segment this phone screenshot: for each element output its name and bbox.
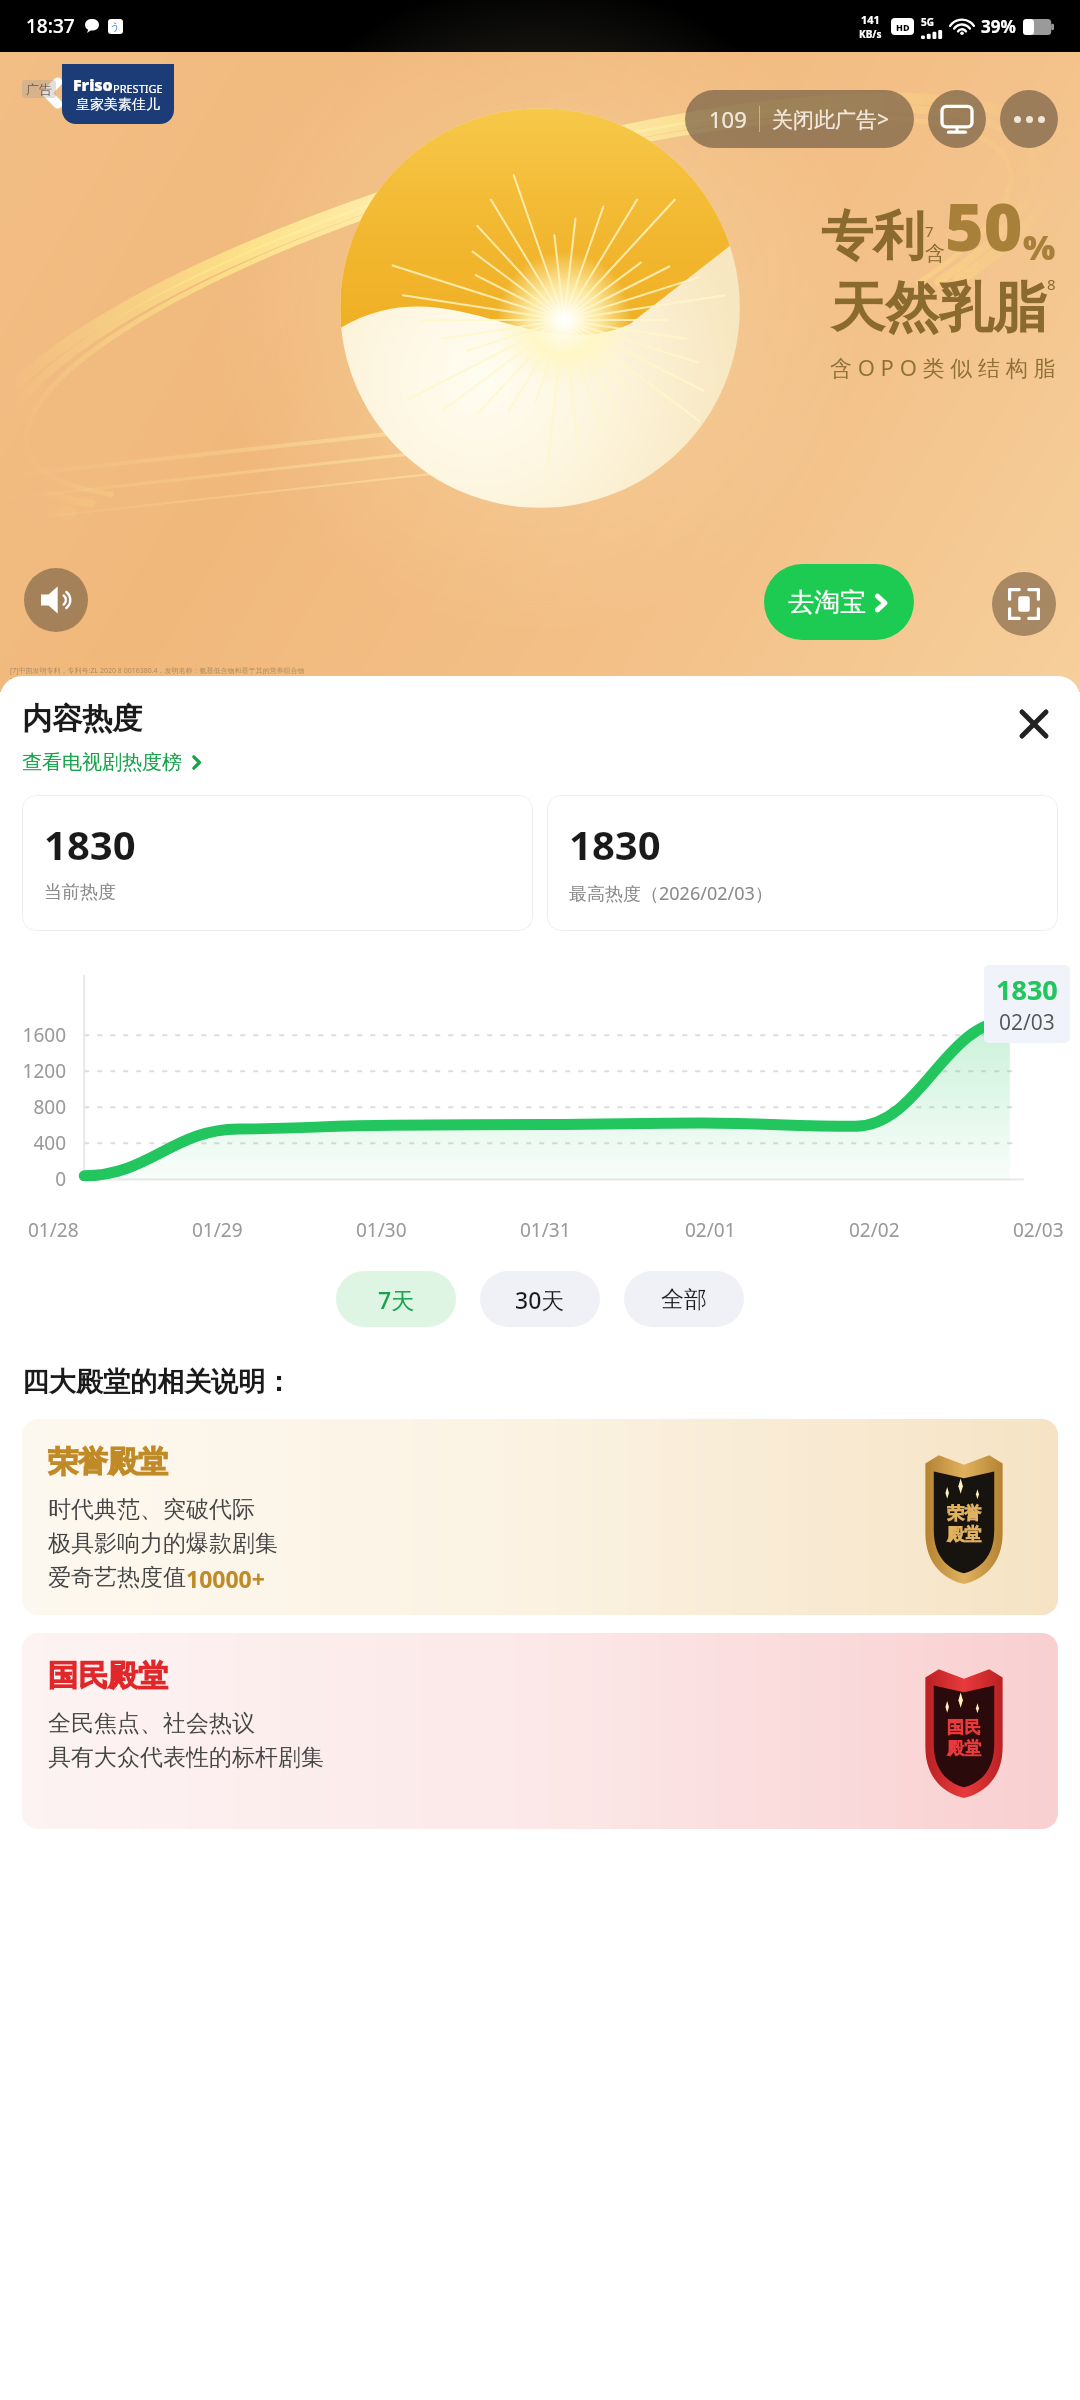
staticText: 1830 [44,817,136,871]
staticText: 荣誉 [947,1503,981,1524]
button[interactable]: 7天 [336,1271,456,1327]
staticText: 含 [925,241,945,266]
staticText: 爱奇艺热度值 [48,1563,186,1592]
staticText: Friso [73,74,113,96]
staticText: 1200 [0,1058,66,1084]
staticText: 1830 [569,817,661,871]
button[interactable]: 去淘宝 [764,564,914,640]
staticText: 查看电视剧热度榜 [22,750,182,775]
staticText: 400 [0,1130,66,1156]
staticText: KB/s [859,27,882,41]
button[interactable]: 1830 [22,795,533,931]
button[interactable]: Scan [992,572,1056,636]
staticText: 10000+ [186,1563,265,1594]
staticText: 7天 [378,1284,415,1315]
staticText: 141 [861,12,880,27]
staticText: 去淘宝 [788,586,866,619]
staticText: 最高热度（2026/02/03） [569,881,773,906]
staticText: 8 [1047,274,1056,294]
staticText: 50 [945,180,1023,270]
staticText: 极具影响力的爆款剧集 [48,1529,278,1558]
staticText: 殿堂 [947,1524,981,1545]
staticText: 广告 [26,81,52,97]
staticText: 18:37 [26,13,75,39]
button[interactable]: Sound [24,568,88,632]
staticText: 内容热度 [22,700,142,738]
staticText: 01/31 [520,1217,571,1243]
staticText: 全部 [661,1285,707,1314]
staticText: 天然乳脂 [831,274,1047,342]
staticText: 01/30 [356,1217,407,1243]
staticText: 皇家美素佳儿 [76,96,160,114]
staticText: う [110,20,121,33]
button[interactable]: 查看电视剧热度榜 [22,750,204,775]
button[interactable]: 荣誉殿堂 [22,1419,1058,1615]
staticText: 0 [0,1166,66,1192]
staticText: 02/01 [685,1217,736,1243]
staticText: 01/28 [28,1217,79,1243]
staticText: [8]该产品中的脂肪50%为天然乳脂 [10,676,117,686]
button[interactable]: 国民殿堂 [22,1633,1058,1829]
staticText: 殿堂 [947,1738,981,1759]
staticText: 荣誉殿堂 [48,1443,168,1481]
staticText: HD [896,21,910,33]
button[interactable]: Back [30,70,76,116]
staticText: 时代典范、突破代际 [48,1495,255,1524]
button[interactable]: 全部 [624,1271,744,1327]
button[interactable]: More options [1000,90,1058,148]
staticText: % [1023,224,1056,270]
staticText: PRESTIGE [113,81,163,96]
staticText: 当前热度 [44,881,116,904]
button[interactable]: TV [928,90,986,148]
staticText: 39% [981,15,1016,38]
staticText: [7]中国发明专利，专利号:ZL 2020 8 0016380.4，发明名称：氨… [10,666,305,676]
staticText: 02/03 [1013,1217,1064,1243]
staticText: 109 [709,104,747,134]
staticText: 800 [0,1094,66,1120]
staticText: 1830 [996,971,1058,1008]
staticText: 02/03 [999,1008,1055,1037]
staticText: 国民 [947,1717,981,1738]
staticText: 1600 [0,1022,66,1048]
staticText: 02/02 [849,1217,900,1243]
staticText: 01/29 [192,1217,243,1243]
staticText: 关闭此广告> [772,105,890,134]
staticText: 具有大众代表性的标杆剧集 [48,1743,324,1772]
staticText: 专利 [821,204,925,270]
staticText: 四大殿堂的相关说明： [22,1365,292,1399]
staticText: 全民焦点、社会热议 [48,1709,255,1738]
button[interactable]: 1830 [547,795,1058,931]
staticText: 30天 [515,1284,565,1315]
staticText: 国民殿堂 [48,1657,168,1695]
staticText: 7 [925,221,934,241]
staticText: 含 O P O 类 似 结 构 脂 [830,352,1056,382]
button[interactable]: 30天 [480,1271,600,1327]
button[interactable]: 109 [685,90,914,148]
staticText: 5G [921,15,934,29]
button[interactable]: Close [1010,700,1058,748]
